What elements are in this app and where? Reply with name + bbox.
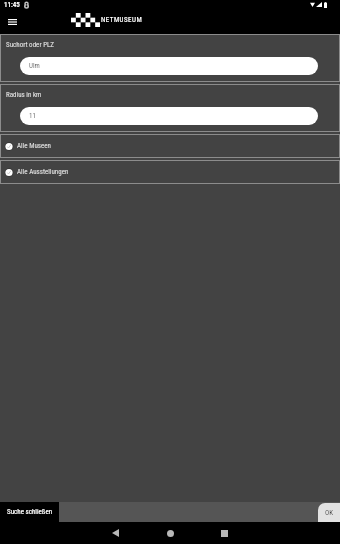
button[interactable]: Menu <box>0 13 25 34</box>
button[interactable]: Home <box>154 522 186 544</box>
staticText: 11 <box>29 112 36 120</box>
staticText: Ulm <box>29 62 40 70</box>
staticText: Suche schließen <box>7 508 53 516</box>
button[interactable]: Alle Museen <box>0 134 340 158</box>
staticText: Alle Museen <box>17 142 51 150</box>
staticText: OK <box>325 509 334 517</box>
button[interactable]: 11 <box>20 107 318 125</box>
staticText: NETMUSEUM <box>101 16 143 24</box>
button[interactable]: OK <box>318 503 340 522</box>
button[interactable]: Alle Ausstellungen <box>0 160 340 184</box>
staticText: Radius in km <box>6 91 42 99</box>
staticText: Alle Ausstellungen <box>17 168 69 176</box>
button[interactable]: Recents <box>208 522 240 544</box>
button[interactable]: Back <box>99 522 131 544</box>
staticText: 11:45 <box>4 1 20 9</box>
button[interactable]: Suche schließen <box>0 502 59 522</box>
staticText: Suchort oder PLZ <box>6 41 54 49</box>
button[interactable]: Ulm <box>20 57 318 75</box>
